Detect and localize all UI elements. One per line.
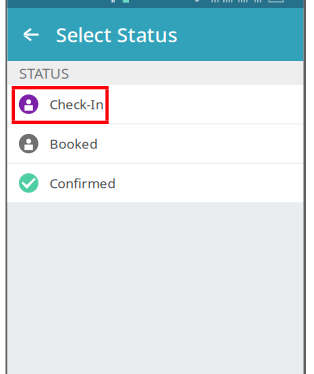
staticText: Booked	[49, 135, 97, 152]
staticText: Check-In	[49, 95, 103, 113]
staticText: STATUS	[19, 63, 69, 83]
staticText: Confirmed	[49, 174, 115, 192]
button[interactable]: Booked	[7, 124, 303, 163]
staticText: Select Status	[56, 21, 178, 48]
button[interactable]: Confirmed	[7, 164, 303, 202]
button[interactable]: Back	[14, 8, 48, 61]
button[interactable]: Check-In	[7, 85, 303, 123]
